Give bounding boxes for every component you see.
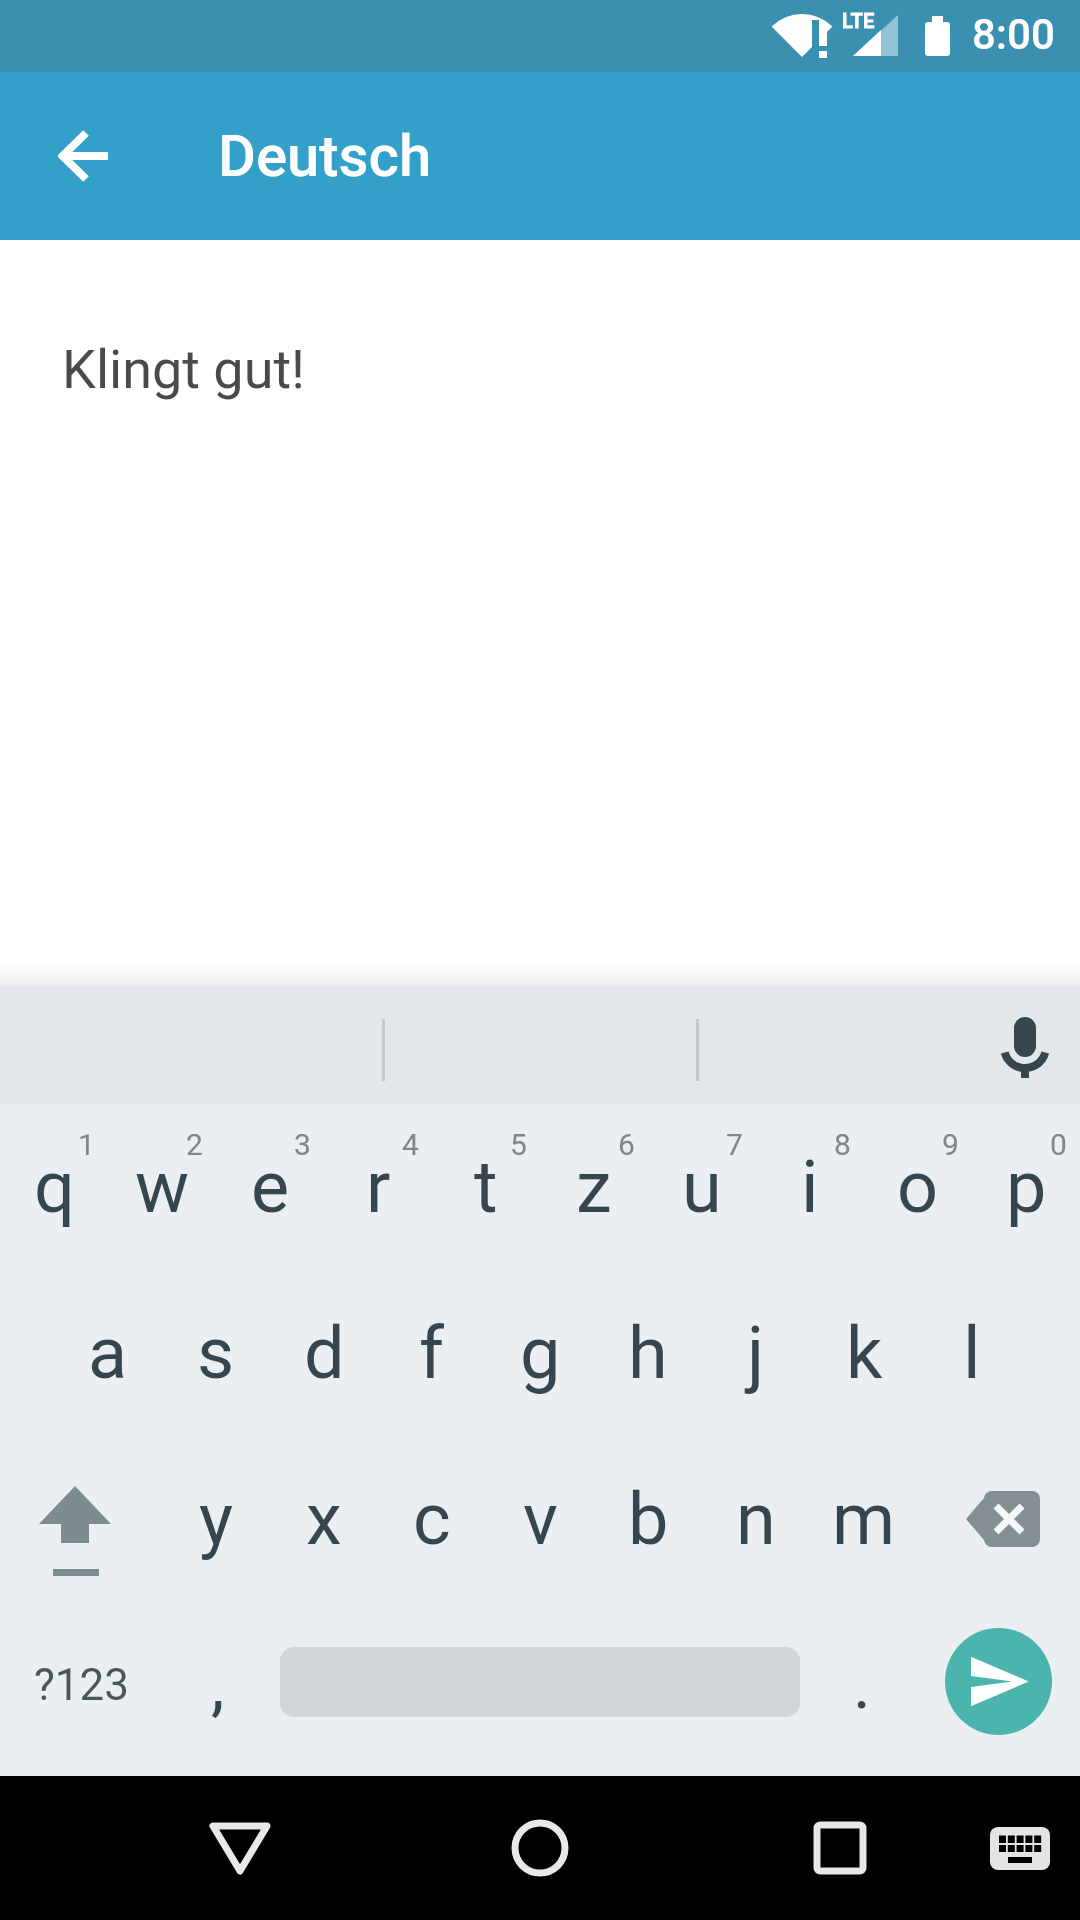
- staticText: v: [523, 1477, 558, 1561]
- staticText: s: [197, 1311, 235, 1395]
- staticText: q: [34, 1145, 75, 1229]
- button[interactable]: b: [594, 1436, 702, 1602]
- staticText: LTE: [842, 9, 875, 32]
- staticText: l: [963, 1311, 981, 1395]
- staticText: Klingt gut!: [62, 338, 306, 401]
- staticText: c: [413, 1477, 451, 1561]
- staticText: a: [88, 1311, 128, 1395]
- staticText: .: [853, 1645, 871, 1725]
- staticText: o: [897, 1145, 939, 1229]
- button[interactable]: w: [108, 1104, 216, 1270]
- button[interactable]: n: [702, 1436, 810, 1602]
- staticText: m: [832, 1477, 896, 1561]
- staticText: t: [474, 1145, 498, 1229]
- staticText: n: [736, 1477, 776, 1561]
- button[interactable]: [480, 1788, 600, 1908]
- button[interactable]: [780, 1788, 900, 1908]
- staticText: Deutsch: [218, 122, 432, 190]
- staticText: w: [135, 1145, 190, 1229]
- staticText: 3: [294, 1127, 311, 1162]
- button[interactable]: ,: [164, 1602, 272, 1768]
- staticText: x: [306, 1477, 342, 1561]
- button[interactable]: s: [162, 1270, 270, 1436]
- button[interactable]: i: [756, 1104, 864, 1270]
- staticText: 2: [186, 1127, 203, 1162]
- staticText: h: [628, 1311, 668, 1395]
- button[interactable]: .: [808, 1602, 916, 1768]
- button[interactable]: p: [972, 1104, 1080, 1270]
- staticText: 8:00: [972, 10, 1055, 59]
- staticText: i: [801, 1145, 819, 1229]
- button[interactable]: d: [270, 1270, 378, 1436]
- button[interactable]: z: [540, 1104, 648, 1270]
- button[interactable]: a: [54, 1270, 162, 1436]
- staticText: ?123: [34, 1659, 129, 1711]
- button[interactable]: r: [324, 1104, 432, 1270]
- button[interactable]: k: [810, 1270, 918, 1436]
- button[interactable]: c: [378, 1436, 486, 1602]
- staticText: g: [520, 1311, 561, 1395]
- staticText: z: [576, 1145, 612, 1229]
- button[interactable]: e: [216, 1104, 324, 1270]
- button[interactable]: l: [918, 1270, 1026, 1436]
- staticText: ,: [211, 1645, 225, 1725]
- button[interactable]: o: [864, 1104, 972, 1270]
- staticText: r: [366, 1145, 391, 1229]
- staticText: 8: [834, 1127, 851, 1162]
- button[interactable]: [918, 1436, 1080, 1602]
- button[interactable]: u: [648, 1104, 756, 1270]
- button[interactable]: x: [270, 1436, 378, 1602]
- button[interactable]: m: [810, 1436, 918, 1602]
- staticText: y: [199, 1477, 234, 1561]
- button[interactable]: [0, 1436, 162, 1602]
- staticText: e: [251, 1145, 290, 1229]
- button[interactable]: f: [378, 1270, 486, 1436]
- staticText: f: [419, 1311, 445, 1395]
- button[interactable]: [975, 1812, 1065, 1884]
- staticText: 9: [942, 1127, 959, 1162]
- staticText: 7: [726, 1127, 743, 1162]
- staticText: p: [1006, 1145, 1047, 1229]
- button[interactable]: g: [486, 1270, 594, 1436]
- button[interactable]: t: [432, 1104, 540, 1270]
- button[interactable]: v: [486, 1436, 594, 1602]
- button[interactable]: j: [702, 1270, 810, 1436]
- staticText: 0: [1050, 1127, 1067, 1162]
- button[interactable]: y: [162, 1436, 270, 1602]
- staticText: 5: [510, 1127, 527, 1162]
- staticText: j: [747, 1311, 765, 1395]
- button[interactable]: h: [594, 1270, 702, 1436]
- button[interactable]: q: [0, 1104, 108, 1270]
- button[interactable]: ?123: [0, 1602, 162, 1768]
- button[interactable]: [945, 1628, 1052, 1735]
- staticText: 6: [618, 1127, 635, 1162]
- button[interactable]: [180, 1788, 300, 1908]
- staticText: 4: [402, 1127, 419, 1162]
- button[interactable]: [36, 108, 132, 204]
- staticText: u: [682, 1145, 722, 1229]
- staticText: b: [628, 1477, 669, 1561]
- staticText: k: [846, 1311, 883, 1395]
- staticText: 1: [78, 1127, 95, 1162]
- staticText: d: [304, 1311, 345, 1395]
